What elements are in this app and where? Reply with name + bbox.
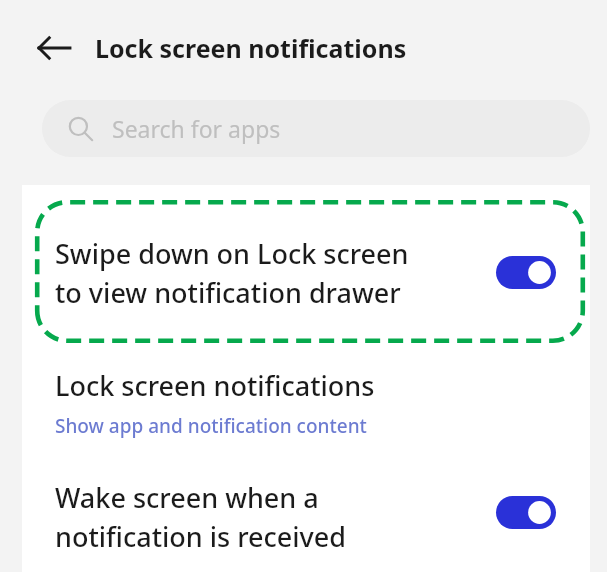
staticText: Show app and notification content (55, 413, 367, 439)
button[interactable]: Wake screen when a notification is recei… (35, 465, 585, 572)
button[interactable]: Swipe down on Lock screen to view notifi… (35, 200, 585, 343)
staticText: Search for apps (112, 113, 281, 144)
staticText: Lock screen notifications (95, 31, 407, 65)
staticText: Lock screen notifications (55, 367, 375, 404)
button[interactable]: Search for apps (42, 100, 590, 157)
button[interactable]: Back (30, 24, 78, 72)
button[interactable]: Lock screen notifications (35, 352, 585, 454)
staticText: Swipe down on Lock screen to view notifi… (55, 235, 409, 311)
staticText: Wake screen when a notification is recei… (55, 479, 347, 555)
